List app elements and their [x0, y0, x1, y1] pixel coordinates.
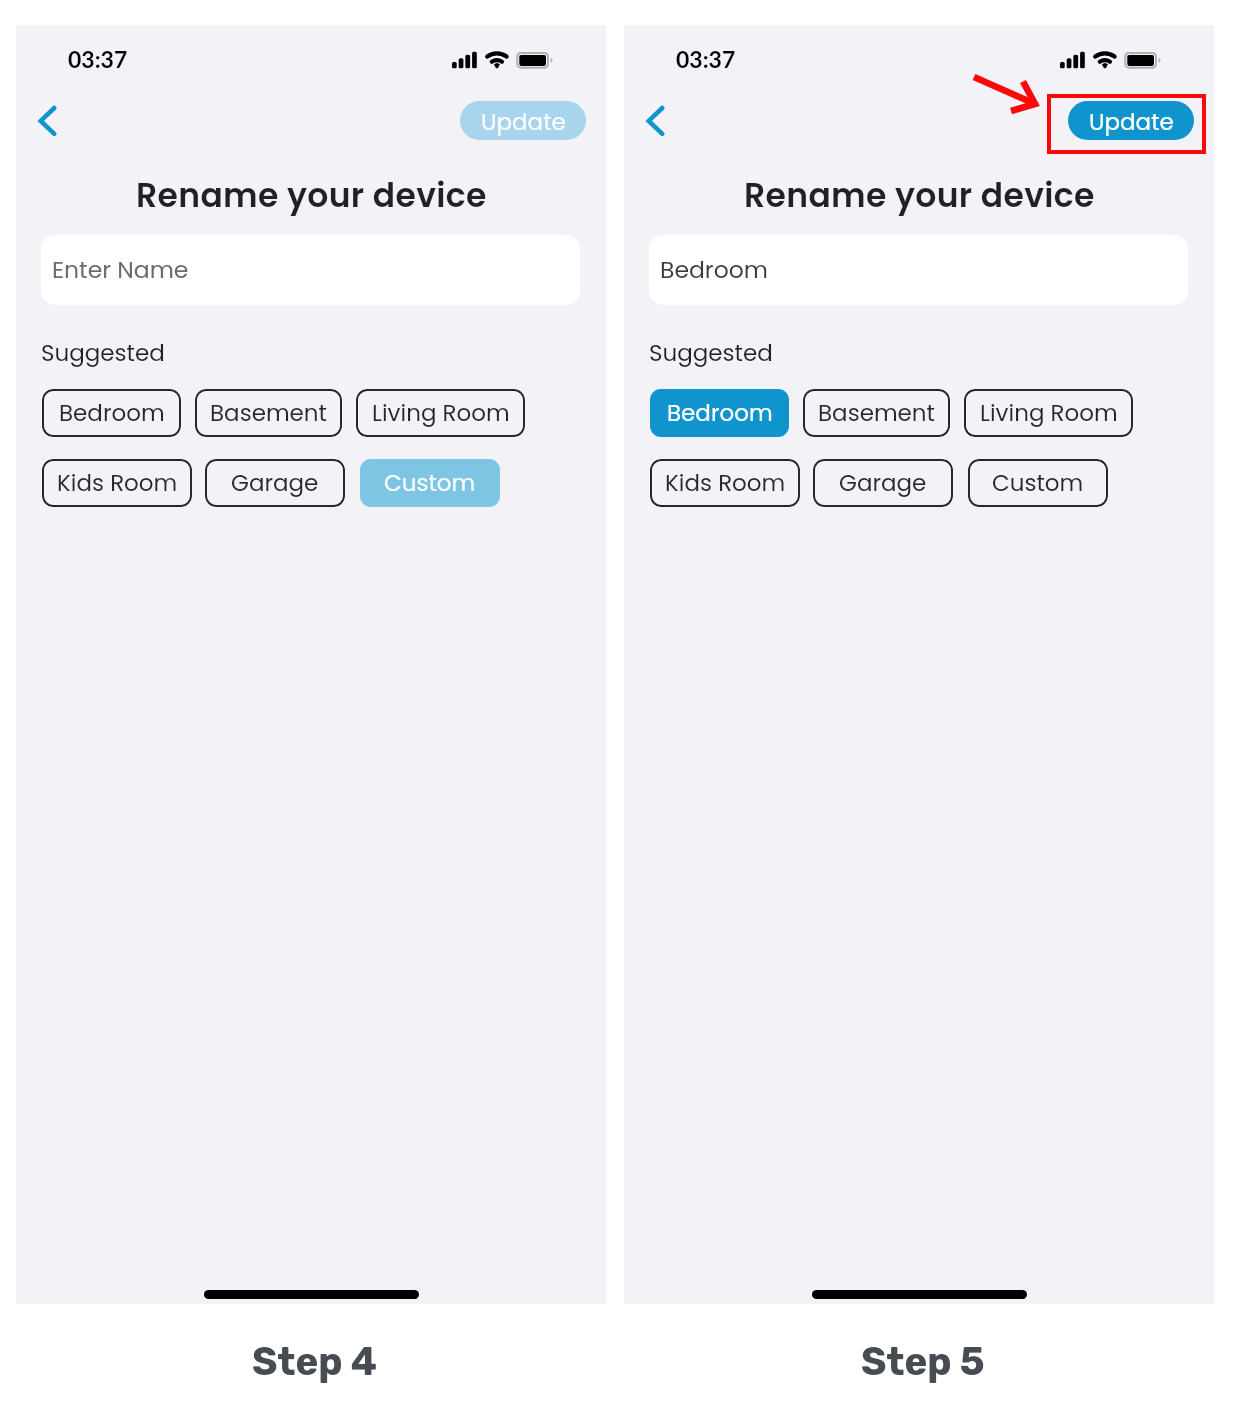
button[interactable]: Custom [968, 459, 1108, 507]
button[interactable]: Back [18, 99, 82, 163]
button[interactable]: Back [626, 99, 690, 163]
button[interactable]: Update [1068, 101, 1194, 140]
staticText: Basement [210, 397, 327, 429]
staticText: 03:37 [68, 45, 128, 73]
button[interactable]: Garage [813, 459, 953, 507]
button[interactable]: Basement [195, 389, 342, 437]
button[interactable]: Update [460, 101, 586, 140]
staticText: Rename your device [136, 172, 487, 218]
button[interactable]: Bedroom [649, 235, 1188, 305]
staticText: Garage [231, 467, 319, 499]
button[interactable]: Custom [360, 459, 500, 507]
staticText: Rename your device [744, 172, 1095, 218]
staticText: Custom [384, 467, 476, 499]
button[interactable]: Bedroom [650, 389, 789, 437]
staticText: Step 5 [861, 1339, 985, 1385]
staticText: Update [1089, 106, 1174, 138]
button[interactable]: Garage [205, 459, 345, 507]
staticText: Bedroom [59, 397, 165, 429]
staticText: Living Room [980, 397, 1118, 429]
staticText: Kids Room [57, 467, 178, 499]
staticText: Step 4 [252, 1339, 378, 1385]
staticText: Enter Name [52, 253, 189, 286]
staticText: Suggested [649, 337, 773, 369]
button[interactable]: Enter Name [41, 235, 580, 305]
staticText: Suggested [41, 337, 165, 369]
button[interactable]: Basement [803, 389, 950, 437]
button[interactable]: Bedroom [42, 389, 181, 437]
staticText: 03:37 [676, 45, 736, 73]
staticText: Basement [818, 397, 935, 429]
button[interactable]: Living Room [356, 389, 525, 437]
staticText: Custom [992, 467, 1084, 499]
staticText: Update [481, 106, 566, 138]
staticText: Living Room [372, 397, 510, 429]
staticText: Bedroom [660, 253, 768, 286]
staticText: Kids Room [665, 467, 786, 499]
button[interactable]: Kids Room [42, 459, 192, 507]
button[interactable]: Living Room [964, 389, 1133, 437]
staticText: Garage [839, 467, 927, 499]
staticText: Bedroom [667, 397, 773, 429]
button[interactable]: Kids Room [650, 459, 800, 507]
